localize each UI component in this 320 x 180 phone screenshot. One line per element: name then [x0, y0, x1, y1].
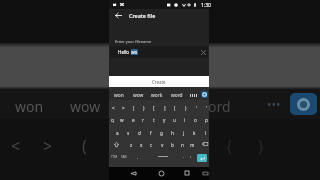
button[interactable]: : [186, 152, 195, 161]
button[interactable]: e [128, 114, 138, 125]
staticText: s [127, 130, 130, 136]
staticText: ••• [267, 96, 281, 112]
staticText: g [160, 130, 163, 136]
button[interactable]: i [180, 114, 190, 125]
staticText: ] [164, 105, 166, 111]
staticText: > [122, 105, 125, 111]
button[interactable]: Recent apps [182, 168, 192, 178]
staticText: ‘ [196, 105, 197, 111]
button[interactable]: TAB [119, 152, 128, 161]
button[interactable]: ( [170, 102, 180, 113]
button[interactable]: s [123, 127, 134, 138]
button[interactable]: Space [143, 152, 183, 161]
button[interactable]: a [112, 127, 123, 138]
button[interactable]: v [157, 139, 167, 150]
button[interactable]: > [118, 102, 128, 113]
button[interactable]: t [149, 114, 159, 125]
button[interactable]: Back [113, 10, 124, 21]
button[interactable]: Keyboard settings [201, 91, 208, 98]
button[interactable]: work [148, 90, 166, 100]
staticText: ] [187, 135, 193, 157]
button[interactable]: wow [129, 90, 147, 100]
staticText: ( [82, 135, 87, 157]
button[interactable]: x [136, 139, 146, 150]
button[interactable]: b [167, 139, 177, 150]
button[interactable]: q [107, 114, 117, 125]
staticText: i [184, 117, 186, 123]
staticText: : [190, 154, 192, 160]
button[interactable]: , [133, 152, 142, 161]
staticText: y [163, 117, 166, 123]
button[interactable]: j [178, 127, 189, 138]
staticText: Create [152, 79, 166, 85]
staticText: } [258, 135, 265, 157]
staticText: { [226, 135, 233, 157]
staticText: e [132, 117, 135, 123]
staticText: n [181, 142, 184, 148]
button[interactable]: l [200, 127, 211, 138]
button[interactable]: ( [129, 102, 139, 113]
button[interactable]: Shift [111, 139, 121, 149]
staticText: z [130, 142, 133, 148]
button[interactable]: f [145, 127, 156, 138]
button[interactable]: w [117, 114, 127, 125]
button[interactable]: ) [181, 102, 191, 113]
button[interactable]: ?1M [110, 152, 119, 161]
staticText: u [173, 117, 176, 123]
staticText: o [194, 117, 197, 123]
staticText: w [120, 117, 124, 123]
button[interactable]: Home [156, 168, 166, 178]
button[interactable]: Backspace [200, 139, 210, 149]
button[interactable]: o [190, 114, 200, 125]
button[interactable]: r [138, 114, 148, 125]
staticText: l [205, 130, 207, 136]
staticText: , [137, 154, 139, 160]
button[interactable]: won [110, 90, 128, 100]
button[interactable]: ] [160, 102, 170, 113]
button[interactable]: Hello [110, 46, 208, 58]
staticText: h [171, 130, 174, 136]
button[interactable]: g [156, 127, 167, 138]
button[interactable]: u [169, 114, 179, 125]
button[interactable]: Enter [197, 154, 207, 162]
button[interactable]: z [126, 139, 136, 150]
staticText: wow [70, 97, 101, 116]
staticText: k [193, 130, 196, 136]
staticText: work [151, 92, 163, 99]
button[interactable]: [ [149, 102, 159, 113]
button[interactable]: word [168, 90, 186, 100]
button[interactable]: More suggestions [189, 91, 199, 99]
staticText: b [171, 142, 174, 148]
button[interactable]: Switch keyboard [200, 168, 210, 178]
staticText: p [205, 117, 208, 123]
button[interactable]: ) [139, 102, 149, 113]
staticText: x [140, 142, 143, 148]
button[interactable]: y [159, 114, 169, 125]
staticText: ) [143, 105, 145, 111]
button[interactable]: < [108, 102, 118, 113]
staticText: < [11, 135, 21, 157]
staticText: q [111, 117, 114, 123]
staticText: . [183, 154, 185, 160]
staticText: work [136, 97, 169, 116]
staticText: d [138, 130, 141, 136]
staticText: Create file [129, 12, 156, 19]
button[interactable]: n [177, 139, 187, 150]
button[interactable]: p [201, 114, 211, 125]
button[interactable]: ‘ [191, 102, 201, 113]
staticText: ’ [206, 105, 207, 111]
button[interactable]: h [167, 127, 178, 138]
button[interactable]: m [187, 139, 197, 150]
staticText: ( [174, 105, 176, 111]
button[interactable]: d [134, 127, 145, 138]
staticText: v [161, 142, 164, 148]
button[interactable]: . [179, 152, 188, 161]
staticText: ?1M [111, 155, 118, 159]
button[interactable]: c [146, 139, 156, 150]
staticText: [ [155, 135, 161, 157]
button[interactable]: Back [128, 168, 138, 178]
button[interactable]: k [189, 127, 200, 138]
button[interactable]: Create [109, 76, 209, 88]
button[interactable]: ’ [201, 102, 211, 113]
staticText: > [43, 135, 53, 157]
